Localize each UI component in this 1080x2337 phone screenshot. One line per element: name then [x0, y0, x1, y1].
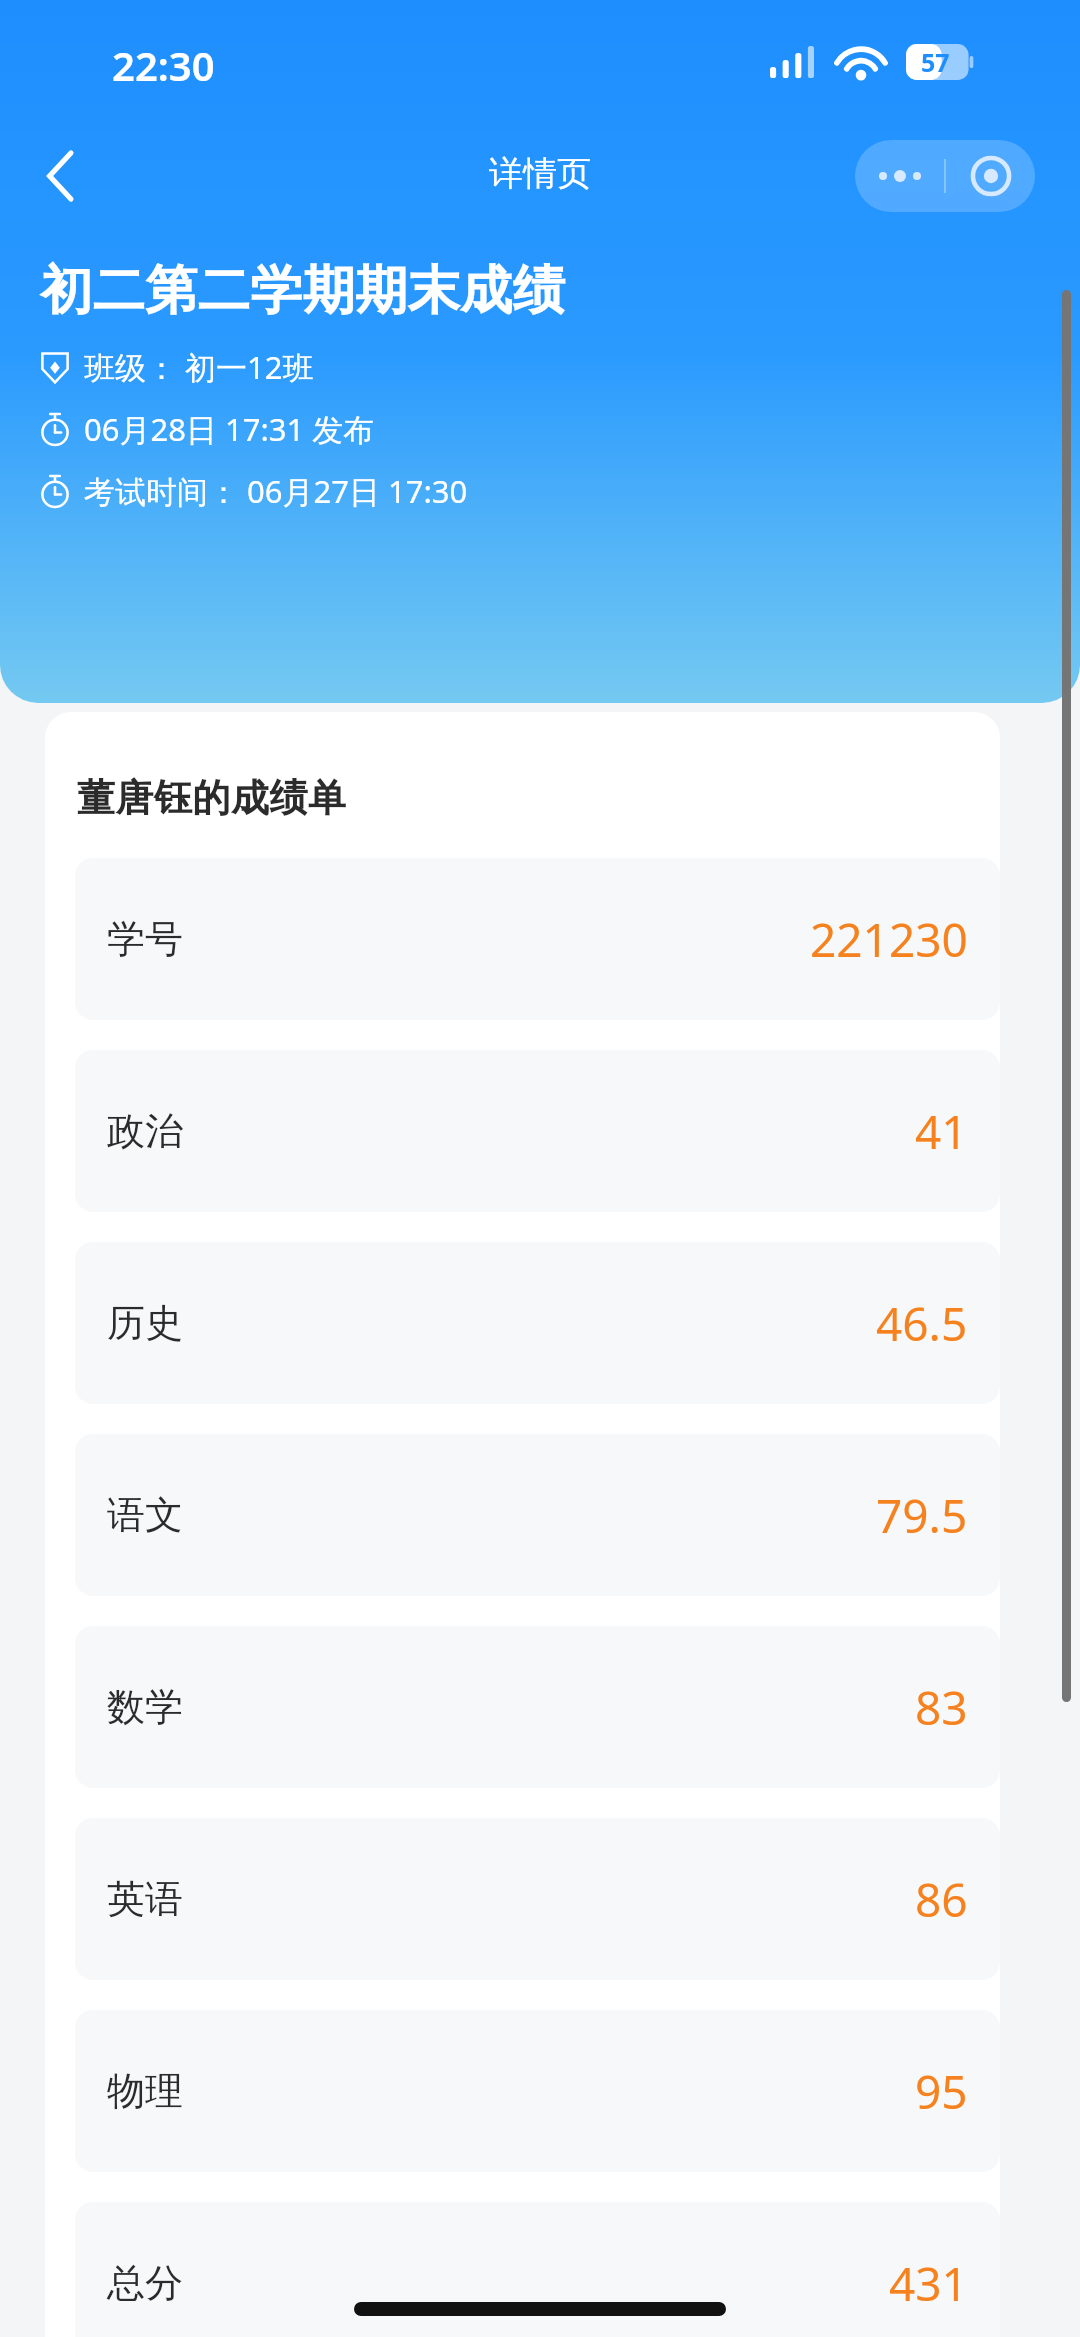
staticText: 83 [915, 1676, 968, 1739]
staticText: 详情页 [0, 152, 1080, 195]
staticText: 79.5 [876, 1484, 968, 1547]
staticText: 221230 [810, 908, 968, 971]
staticText: 英语 [107, 1875, 183, 1923]
button[interactable]: Back [18, 134, 102, 218]
staticText: 班级： 初一12班 [84, 346, 314, 388]
button[interactable]: 总分 [75, 2202, 1000, 2337]
staticText: 06月28日 17:31 发布 [84, 408, 375, 450]
staticText: 41 [915, 1100, 968, 1163]
staticText: 数学 [107, 1683, 183, 1731]
staticText: 431 [889, 2252, 968, 2315]
staticText: 46.5 [876, 1292, 968, 1355]
staticText: 考试时间： 06月27日 17:30 [84, 470, 468, 512]
button[interactable]: More [855, 140, 944, 212]
button[interactable]: 数学 [75, 1626, 1000, 1788]
staticText: 物理 [107, 2067, 183, 2115]
staticText: 22:30 [112, 38, 215, 92]
staticText: 总分 [107, 2259, 183, 2307]
button[interactable]: 政治 [75, 1050, 1000, 1212]
button[interactable]: 英语 [75, 1818, 1000, 1980]
staticText: 学号 [107, 915, 183, 963]
staticText: 语文 [107, 1491, 183, 1539]
button[interactable]: 历史 [75, 1242, 1000, 1404]
staticText: 历史 [107, 1299, 183, 1347]
staticText: 57 [921, 45, 950, 79]
staticText: 初二第二学期期末成绩 [40, 258, 565, 324]
staticText: 95 [915, 2060, 968, 2123]
button[interactable]: 学号 [75, 858, 1000, 1020]
staticText: 政治 [107, 1107, 183, 1155]
button[interactable]: 语文 [75, 1434, 1000, 1596]
staticText: 董唐钰的成绩单 [77, 774, 347, 822]
staticText: 86 [915, 1868, 968, 1931]
button[interactable]: 物理 [75, 2010, 1000, 2172]
button[interactable]: Close [946, 140, 1035, 212]
